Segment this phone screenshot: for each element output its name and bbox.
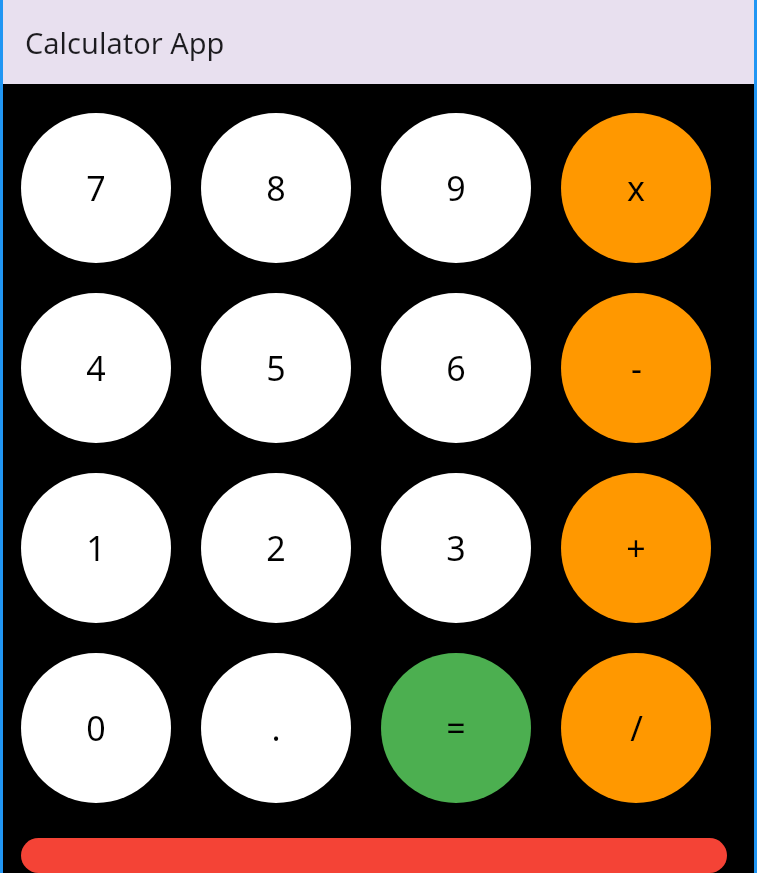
staticText: + [626,525,646,571]
button[interactable]: 5 [201,293,351,443]
staticText: Calculator App [25,23,225,62]
staticText: / [630,705,643,751]
staticText: 2 [266,525,286,571]
staticText: 1 [86,525,106,571]
staticText: - [631,345,642,391]
staticText: x [627,165,645,211]
button[interactable]: + [561,473,711,623]
button[interactable]: 9 [381,113,531,263]
staticText: 6 [446,345,466,391]
button[interactable]: x [561,113,711,263]
staticText: 5 [266,345,286,391]
staticText: 4 [86,345,106,391]
button[interactable]: 4 [21,293,171,443]
staticText: = [446,705,466,751]
staticText: 9 [446,165,466,211]
button[interactable]: = [381,653,531,803]
button[interactable]: 0 [21,653,171,803]
button[interactable]: 6 [381,293,531,443]
button[interactable]: 8 [201,113,351,263]
button[interactable]: / [561,653,711,803]
staticText: . [271,705,281,751]
button[interactable]: 3 [381,473,531,623]
button[interactable]: 7 [21,113,171,263]
button[interactable]: . [201,653,351,803]
button[interactable] [21,838,727,873]
staticText: 8 [266,165,286,211]
staticText: 0 [86,705,106,751]
staticText: 7 [86,165,106,211]
button[interactable]: 2 [201,473,351,623]
button[interactable]: - [561,293,711,443]
staticText: 3 [446,525,466,571]
button[interactable]: 1 [21,473,171,623]
